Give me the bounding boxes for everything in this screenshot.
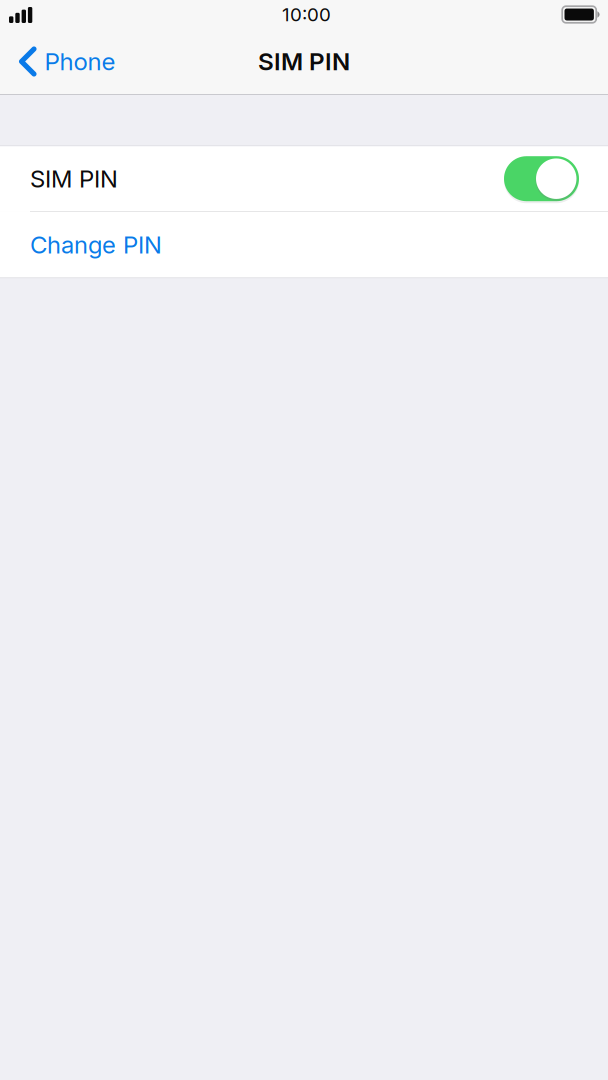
button[interactable]: SIM PIN bbox=[0, 146, 608, 211]
staticText: SIM PIN bbox=[258, 47, 350, 76]
staticText: 10:00 bbox=[282, 3, 331, 26]
staticText: Change PIN bbox=[30, 230, 162, 259]
staticText: SIM PIN bbox=[30, 164, 118, 193]
staticText: Phone bbox=[44, 47, 115, 76]
button[interactable]: Change PIN bbox=[0, 212, 608, 277]
button[interactable]: Phone bbox=[0, 29, 129, 94]
